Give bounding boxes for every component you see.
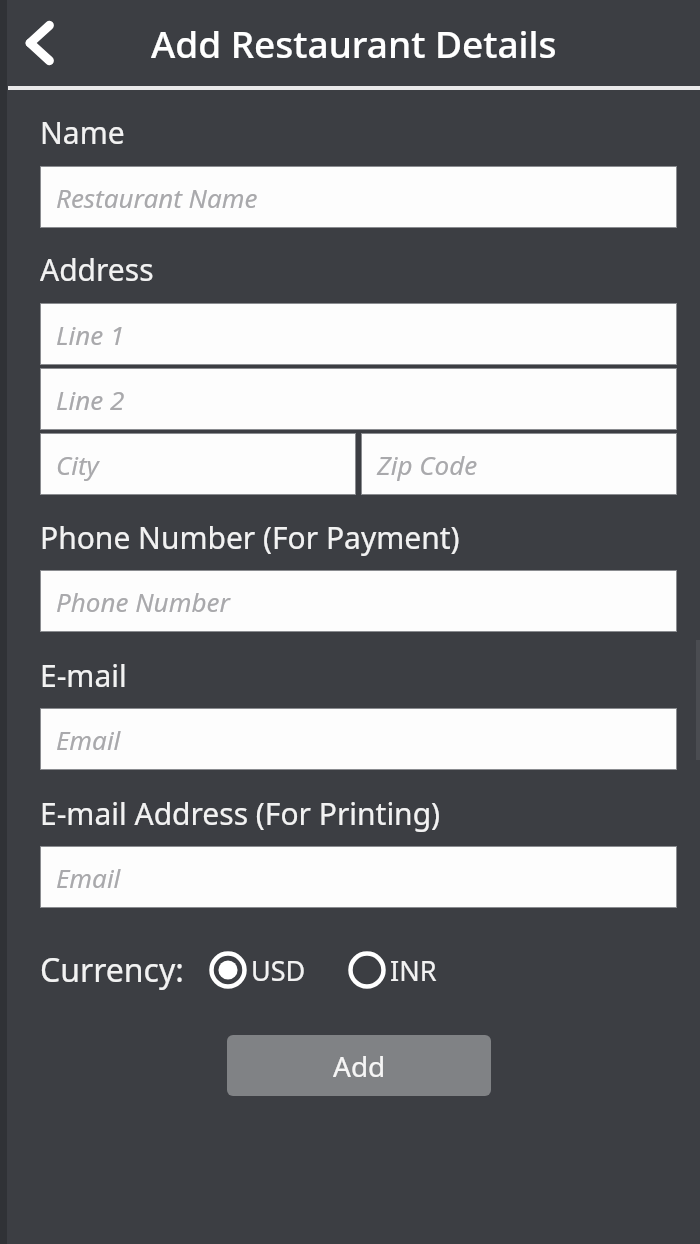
staticText: USD [251,952,306,989]
staticText: Restaurant Name [56,180,258,215]
staticText: Email [56,860,121,895]
staticText: E-mail [40,655,127,696]
staticText: Line 1 [56,317,125,352]
staticText: Currency: [40,948,184,992]
staticText: City [56,447,99,482]
staticText: Address [40,249,154,290]
button[interactable]: Email [40,708,677,770]
button[interactable]: Restaurant Name [40,166,677,228]
button[interactable]: Phone Number [40,570,677,632]
staticText: Name [40,112,125,153]
staticText: Zip Code [377,447,478,482]
button[interactable]: City [40,433,356,495]
staticText: Add [333,1047,386,1085]
button[interactable]: Add [227,1035,491,1096]
button[interactable]: INR [348,951,437,989]
button[interactable]: USD [209,951,306,989]
button[interactable]: Email [40,846,677,908]
button[interactable]: Line 2 [40,368,677,430]
button[interactable]: Line 1 [40,303,677,365]
button[interactable]: Zip Code [361,433,677,495]
staticText: Line 2 [56,382,125,417]
staticText: Email [56,722,121,757]
button[interactable]: Back [7,9,75,77]
staticText: Add Restaurant Details [151,18,557,68]
staticText: Phone Number [56,584,230,619]
staticText: INR [390,952,437,989]
staticText: E-mail Address (For Printing) [40,793,441,834]
staticText: Phone Number (For Payment) [40,517,460,558]
